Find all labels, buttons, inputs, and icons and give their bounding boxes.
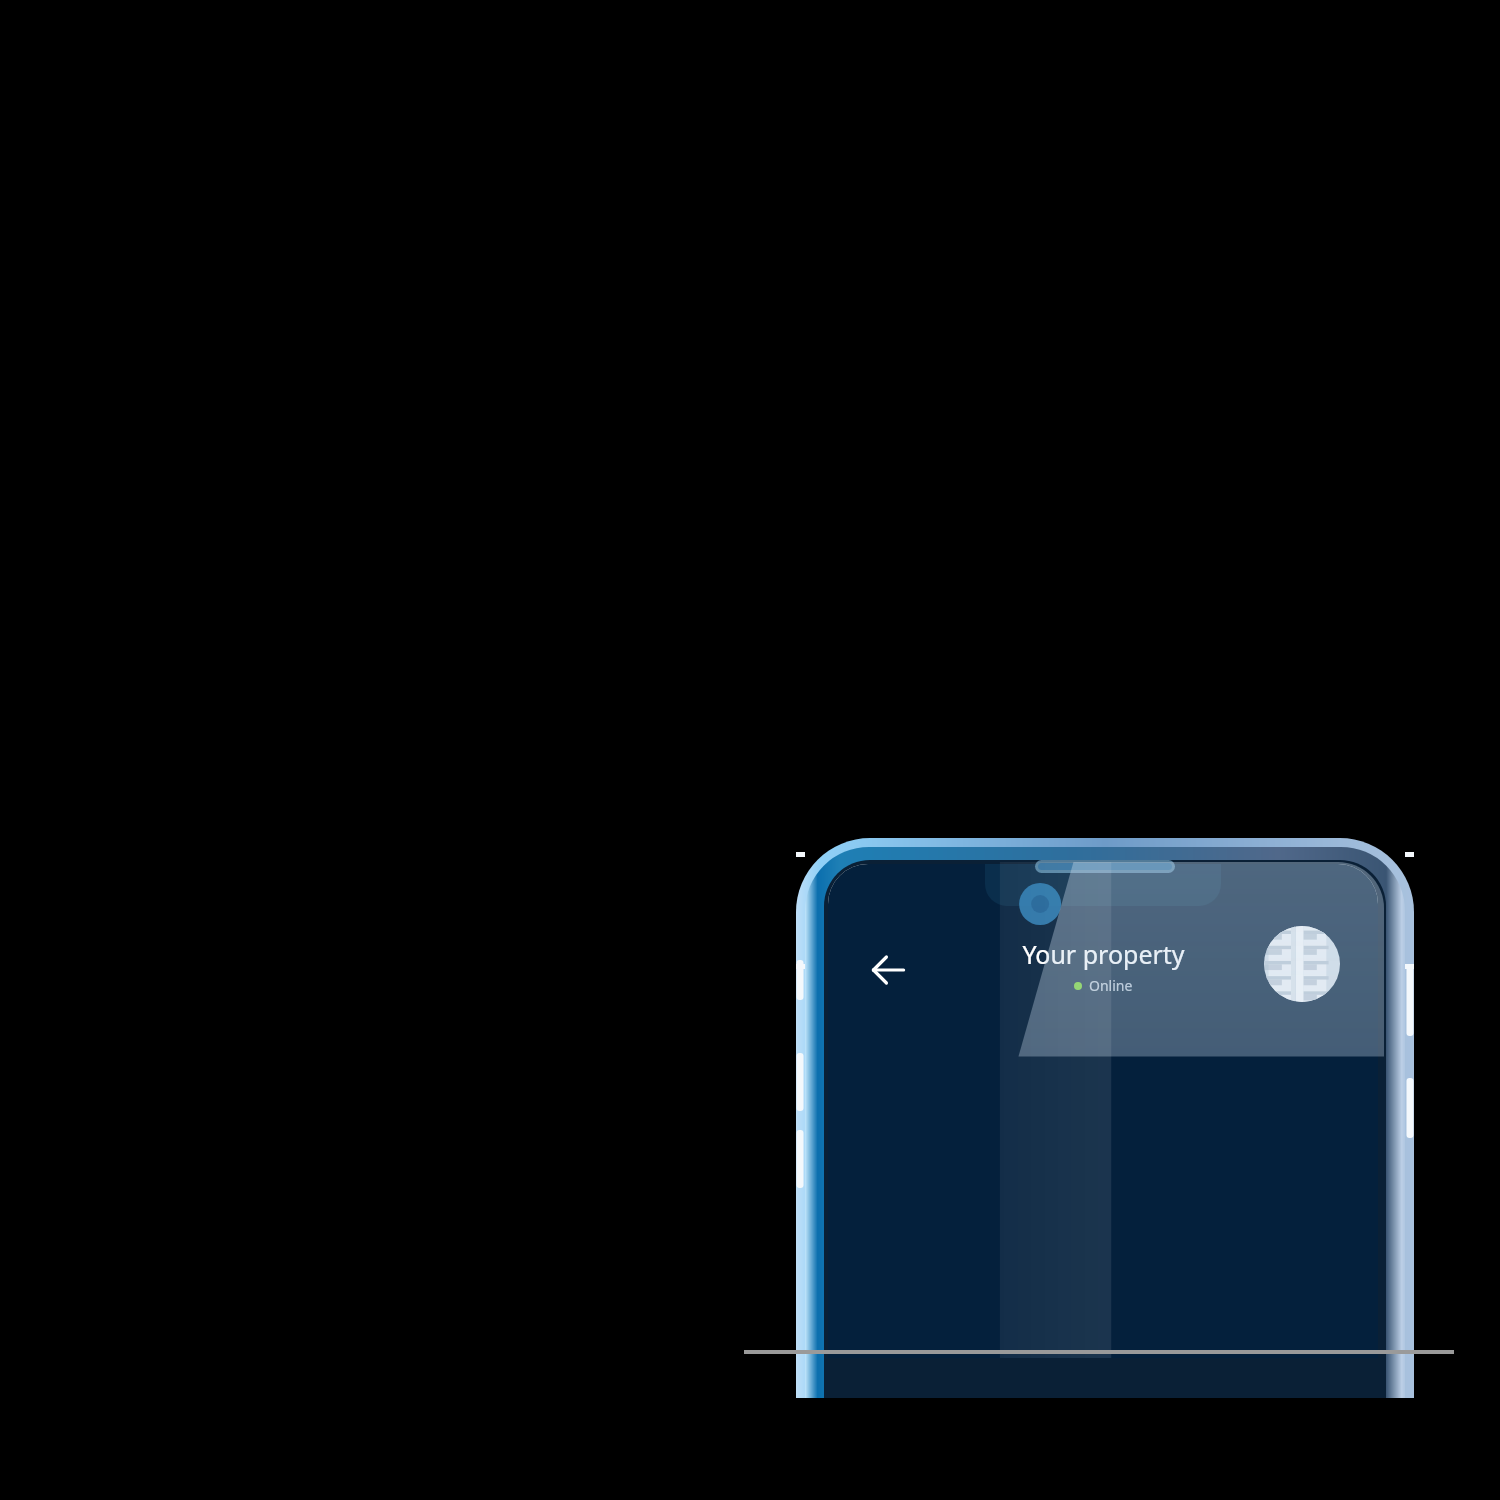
staticText: Your property (1022, 937, 1185, 971)
staticText: Online (1089, 976, 1133, 995)
button[interactable]: Back (862, 944, 914, 996)
button[interactable]: Property photo (1264, 926, 1340, 1002)
